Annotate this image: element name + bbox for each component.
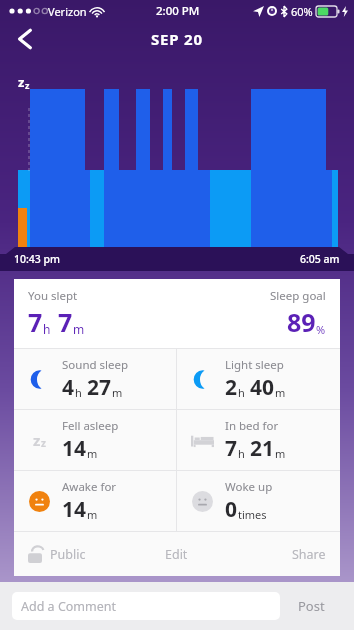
staticText: m [112, 385, 123, 400]
button[interactable]: Sound sleep [14, 349, 176, 409]
staticText: m [87, 446, 98, 461]
staticText: z [18, 73, 25, 91]
button[interactable]: Share [231, 532, 340, 576]
staticText: 7 [28, 305, 43, 339]
staticText: Edit [165, 546, 188, 563]
staticText: Fell asleep [62, 418, 119, 434]
button[interactable]: Edit [122, 532, 231, 576]
button[interactable]: In bed for [177, 410, 340, 470]
button[interactable]: Light sleep [177, 349, 340, 409]
button[interactable]: Back [6, 22, 42, 56]
staticText: You slept [28, 288, 78, 304]
staticText: 89 [287, 305, 316, 339]
staticText: z [25, 79, 30, 91]
button[interactable]: Awake for [14, 471, 176, 531]
staticText: m [87, 507, 98, 522]
staticText: 27 [87, 373, 112, 402]
staticText: Public [50, 546, 86, 563]
button[interactable]: z [14, 410, 176, 470]
staticText: 60% [291, 4, 313, 19]
staticText: m [73, 321, 85, 337]
staticText: 7 [58, 305, 73, 339]
staticText: Add a Comment [21, 598, 117, 615]
staticText: 40 [250, 373, 275, 402]
button[interactable]: Public [14, 532, 122, 576]
staticText: 10:43 pm [14, 252, 61, 266]
staticText: Light sleep [225, 357, 284, 373]
staticText: 2:00 PM [156, 3, 200, 19]
staticText: 21 [250, 434, 275, 463]
staticText: m [275, 446, 286, 461]
staticText: In bed for [225, 418, 279, 434]
staticText: z [41, 436, 46, 450]
staticText: times [238, 507, 267, 522]
staticText: 4 [62, 373, 75, 402]
staticText: 14 [62, 434, 87, 463]
staticText: h [43, 321, 51, 337]
staticText: 0 [225, 495, 238, 524]
staticText: Share [292, 546, 326, 563]
staticText: SEP 20 [151, 29, 203, 49]
staticText: Sound sleep [62, 357, 129, 373]
staticText: Sleep goal [270, 288, 326, 304]
staticText: Post [298, 597, 325, 615]
staticText: Woke up [225, 479, 273, 495]
staticText: z [33, 430, 41, 450]
staticText: h [238, 446, 245, 461]
button[interactable]: Post [280, 582, 342, 630]
staticText: h [75, 385, 82, 400]
staticText: 14 [62, 495, 87, 524]
staticText: h [238, 385, 245, 400]
staticText: Awake for [62, 479, 117, 495]
staticText: m [275, 385, 286, 400]
staticText: 7 [225, 434, 238, 463]
staticText: Verizon [48, 4, 87, 19]
staticText: % [316, 322, 326, 337]
button[interactable]: Woke up [177, 471, 340, 531]
button[interactable]: Add a Comment [12, 592, 280, 620]
staticText: 2 [225, 373, 238, 402]
staticText: 6:05 am [300, 252, 340, 266]
